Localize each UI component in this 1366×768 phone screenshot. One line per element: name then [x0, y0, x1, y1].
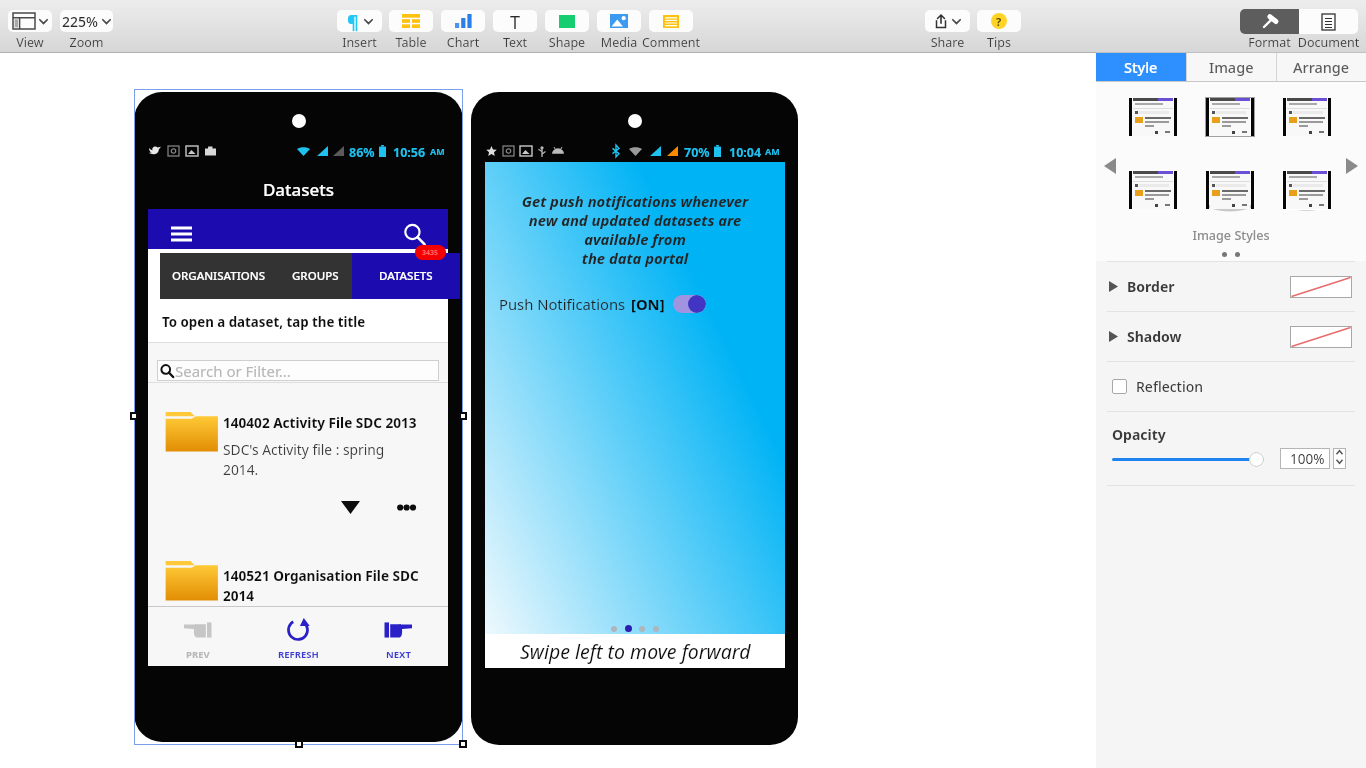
staticText: Datasets — [134, 178, 463, 201]
staticText: 100% — [1290, 450, 1325, 468]
staticText: PREV — [186, 648, 210, 661]
button[interactable]: ? — [977, 10, 1021, 51]
button[interactable]: Format — [1240, 9, 1299, 34]
button[interactable]: Table — [389, 10, 433, 51]
button[interactable]: Search or Filter... — [157, 360, 439, 381]
staticText: Image — [1209, 57, 1254, 77]
staticText: Tips — [959, 34, 1039, 51]
button[interactable] — [1283, 171, 1331, 209]
staticText: Shape — [527, 34, 607, 51]
button[interactable]: Border — [1109, 262, 1352, 311]
button[interactable]: 140521 Organisation File SDC 2014 — [164, 555, 463, 605]
button[interactable]: More options — [397, 504, 416, 511]
staticText: NEXT — [386, 648, 411, 661]
button[interactable]: PREV — [148, 607, 248, 666]
button[interactable]: Expand — [341, 501, 360, 514]
staticText: Arrange — [1293, 57, 1350, 77]
button[interactable]: Shadow — [1109, 312, 1352, 361]
button[interactable]: Image — [1186, 53, 1276, 81]
staticText: Reflection — [1136, 377, 1204, 396]
button[interactable] — [1283, 98, 1331, 136]
staticText: 140402 Activity File SDC 2013 — [223, 413, 417, 432]
staticText: Insert — [319, 34, 400, 51]
button[interactable]: DATASETS — [352, 253, 460, 299]
staticText: Media — [579, 34, 659, 51]
button[interactable] — [1129, 98, 1177, 136]
button[interactable]: 225% — [60, 10, 113, 51]
button[interactable]: T — [493, 10, 537, 51]
button[interactable]: Comment — [649, 10, 693, 51]
staticText: Zoom — [42, 34, 131, 51]
button[interactable]: Adjust opacity — [1333, 448, 1346, 469]
button[interactable]: 140402 Activity File SDC 2013 — [164, 406, 463, 480]
staticText: Shadow — [1127, 327, 1182, 346]
button[interactable]: ¶ — [337, 10, 382, 51]
staticText: Text — [475, 34, 555, 51]
staticText: 86% — [349, 144, 375, 158]
staticText: SDC's Activity file : spring 2014. — [223, 440, 385, 480]
button[interactable]: Menu — [171, 226, 192, 242]
button[interactable]: Style — [1096, 53, 1186, 81]
button[interactable]: ORGANISATIONS — [160, 253, 278, 299]
staticText: Table — [371, 34, 451, 51]
staticText: Search or Filter... — [175, 361, 291, 381]
staticText: Opacity — [1112, 425, 1166, 444]
button[interactable]: Reflection — [1112, 362, 1366, 411]
button[interactable]: Opacity slider — [1249, 452, 1264, 467]
staticText: ORGANISATIONS — [172, 268, 266, 284]
staticText: GROUPS — [292, 268, 339, 284]
button[interactable]: Shape — [545, 10, 589, 51]
staticText: ¶ — [347, 10, 359, 32]
staticText: 10:56 — [393, 144, 426, 158]
staticText: View — [0, 34, 70, 51]
staticText: Document — [1297, 34, 1360, 51]
button[interactable]: REFRESH — [248, 607, 348, 666]
button[interactable]: Previous styles — [1104, 158, 1116, 174]
staticText: Push Notifications — [499, 294, 626, 314]
staticText: 70% — [684, 144, 710, 158]
staticText: Share — [907, 34, 988, 51]
staticText: 3435 — [422, 248, 439, 258]
button[interactable]: Push notifications toggle — [673, 295, 706, 313]
staticText: Comment — [631, 34, 711, 51]
staticText: REFRESH — [278, 648, 319, 661]
staticText: 225% — [62, 12, 98, 31]
button[interactable] — [1206, 98, 1254, 136]
staticText: DATASETS — [379, 268, 433, 284]
button[interactable]: Chart — [441, 10, 485, 51]
button[interactable]: Document — [1299, 9, 1358, 34]
button[interactable] — [1129, 171, 1177, 209]
button[interactable]: GROUPS — [278, 253, 352, 299]
button[interactable]: Share — [925, 10, 970, 51]
button[interactable]: View — [8, 10, 52, 51]
staticText: T — [510, 10, 521, 32]
staticText: Chart — [423, 34, 503, 51]
staticText: 140521 Organisation File SDC 2014 — [223, 566, 419, 605]
staticText: Swipe left to move forward — [520, 638, 751, 665]
staticText: To open a dataset, tap the title — [162, 313, 366, 331]
staticText: Border — [1127, 277, 1175, 296]
staticText: Style — [1124, 57, 1158, 77]
button[interactable] — [1206, 171, 1254, 209]
button[interactable]: NEXT — [348, 607, 448, 666]
button[interactable]: Arrange — [1276, 53, 1366, 81]
button[interactable]: Next styles — [1346, 158, 1358, 174]
staticText: Get push notifications whenever new and … — [485, 191, 785, 268]
button[interactable]: Media — [597, 10, 641, 51]
staticText: Image Styles — [1096, 227, 1366, 244]
staticText: Format — [1240, 34, 1299, 51]
staticText: ? — [996, 14, 1002, 29]
staticText: [ON] — [631, 294, 665, 314]
staticText: 10:04 — [729, 144, 762, 158]
staticText: AM — [430, 145, 445, 157]
staticText: AM — [765, 145, 780, 157]
button[interactable]: Search — [403, 223, 426, 246]
